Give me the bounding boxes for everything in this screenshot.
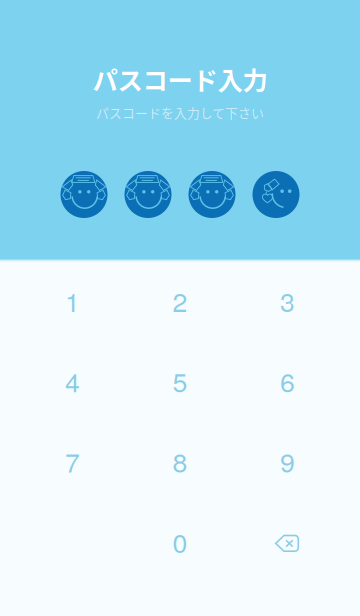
staticText: 5 (172, 362, 187, 400)
button[interactable]: 1 (19, 260, 126, 341)
button[interactable]: 7 (19, 421, 126, 501)
staticText: 3 (280, 281, 295, 320)
button[interactable]: Delete (233, 503, 341, 583)
button[interactable]: 6 (234, 341, 341, 421)
button[interactable]: 0 (126, 501, 234, 581)
button[interactable]: 4 (19, 341, 126, 421)
staticText: 6 (280, 362, 295, 400)
staticText: パスコード入力 (92, 61, 267, 97)
staticText: 8 (172, 442, 187, 480)
staticText: 4 (65, 362, 80, 400)
button[interactable]: 2 (126, 260, 234, 341)
staticText: パスコードを入力して下さい (96, 103, 264, 122)
button[interactable]: 9 (234, 421, 341, 501)
button[interactable]: 8 (126, 421, 234, 501)
staticText: 9 (280, 442, 295, 480)
staticText: 7 (65, 442, 80, 480)
staticText: 0 (172, 522, 187, 560)
staticText: 1 (65, 281, 80, 320)
staticText: 2 (172, 281, 187, 320)
button[interactable]: 5 (126, 341, 234, 421)
button[interactable]: 3 (234, 260, 341, 341)
